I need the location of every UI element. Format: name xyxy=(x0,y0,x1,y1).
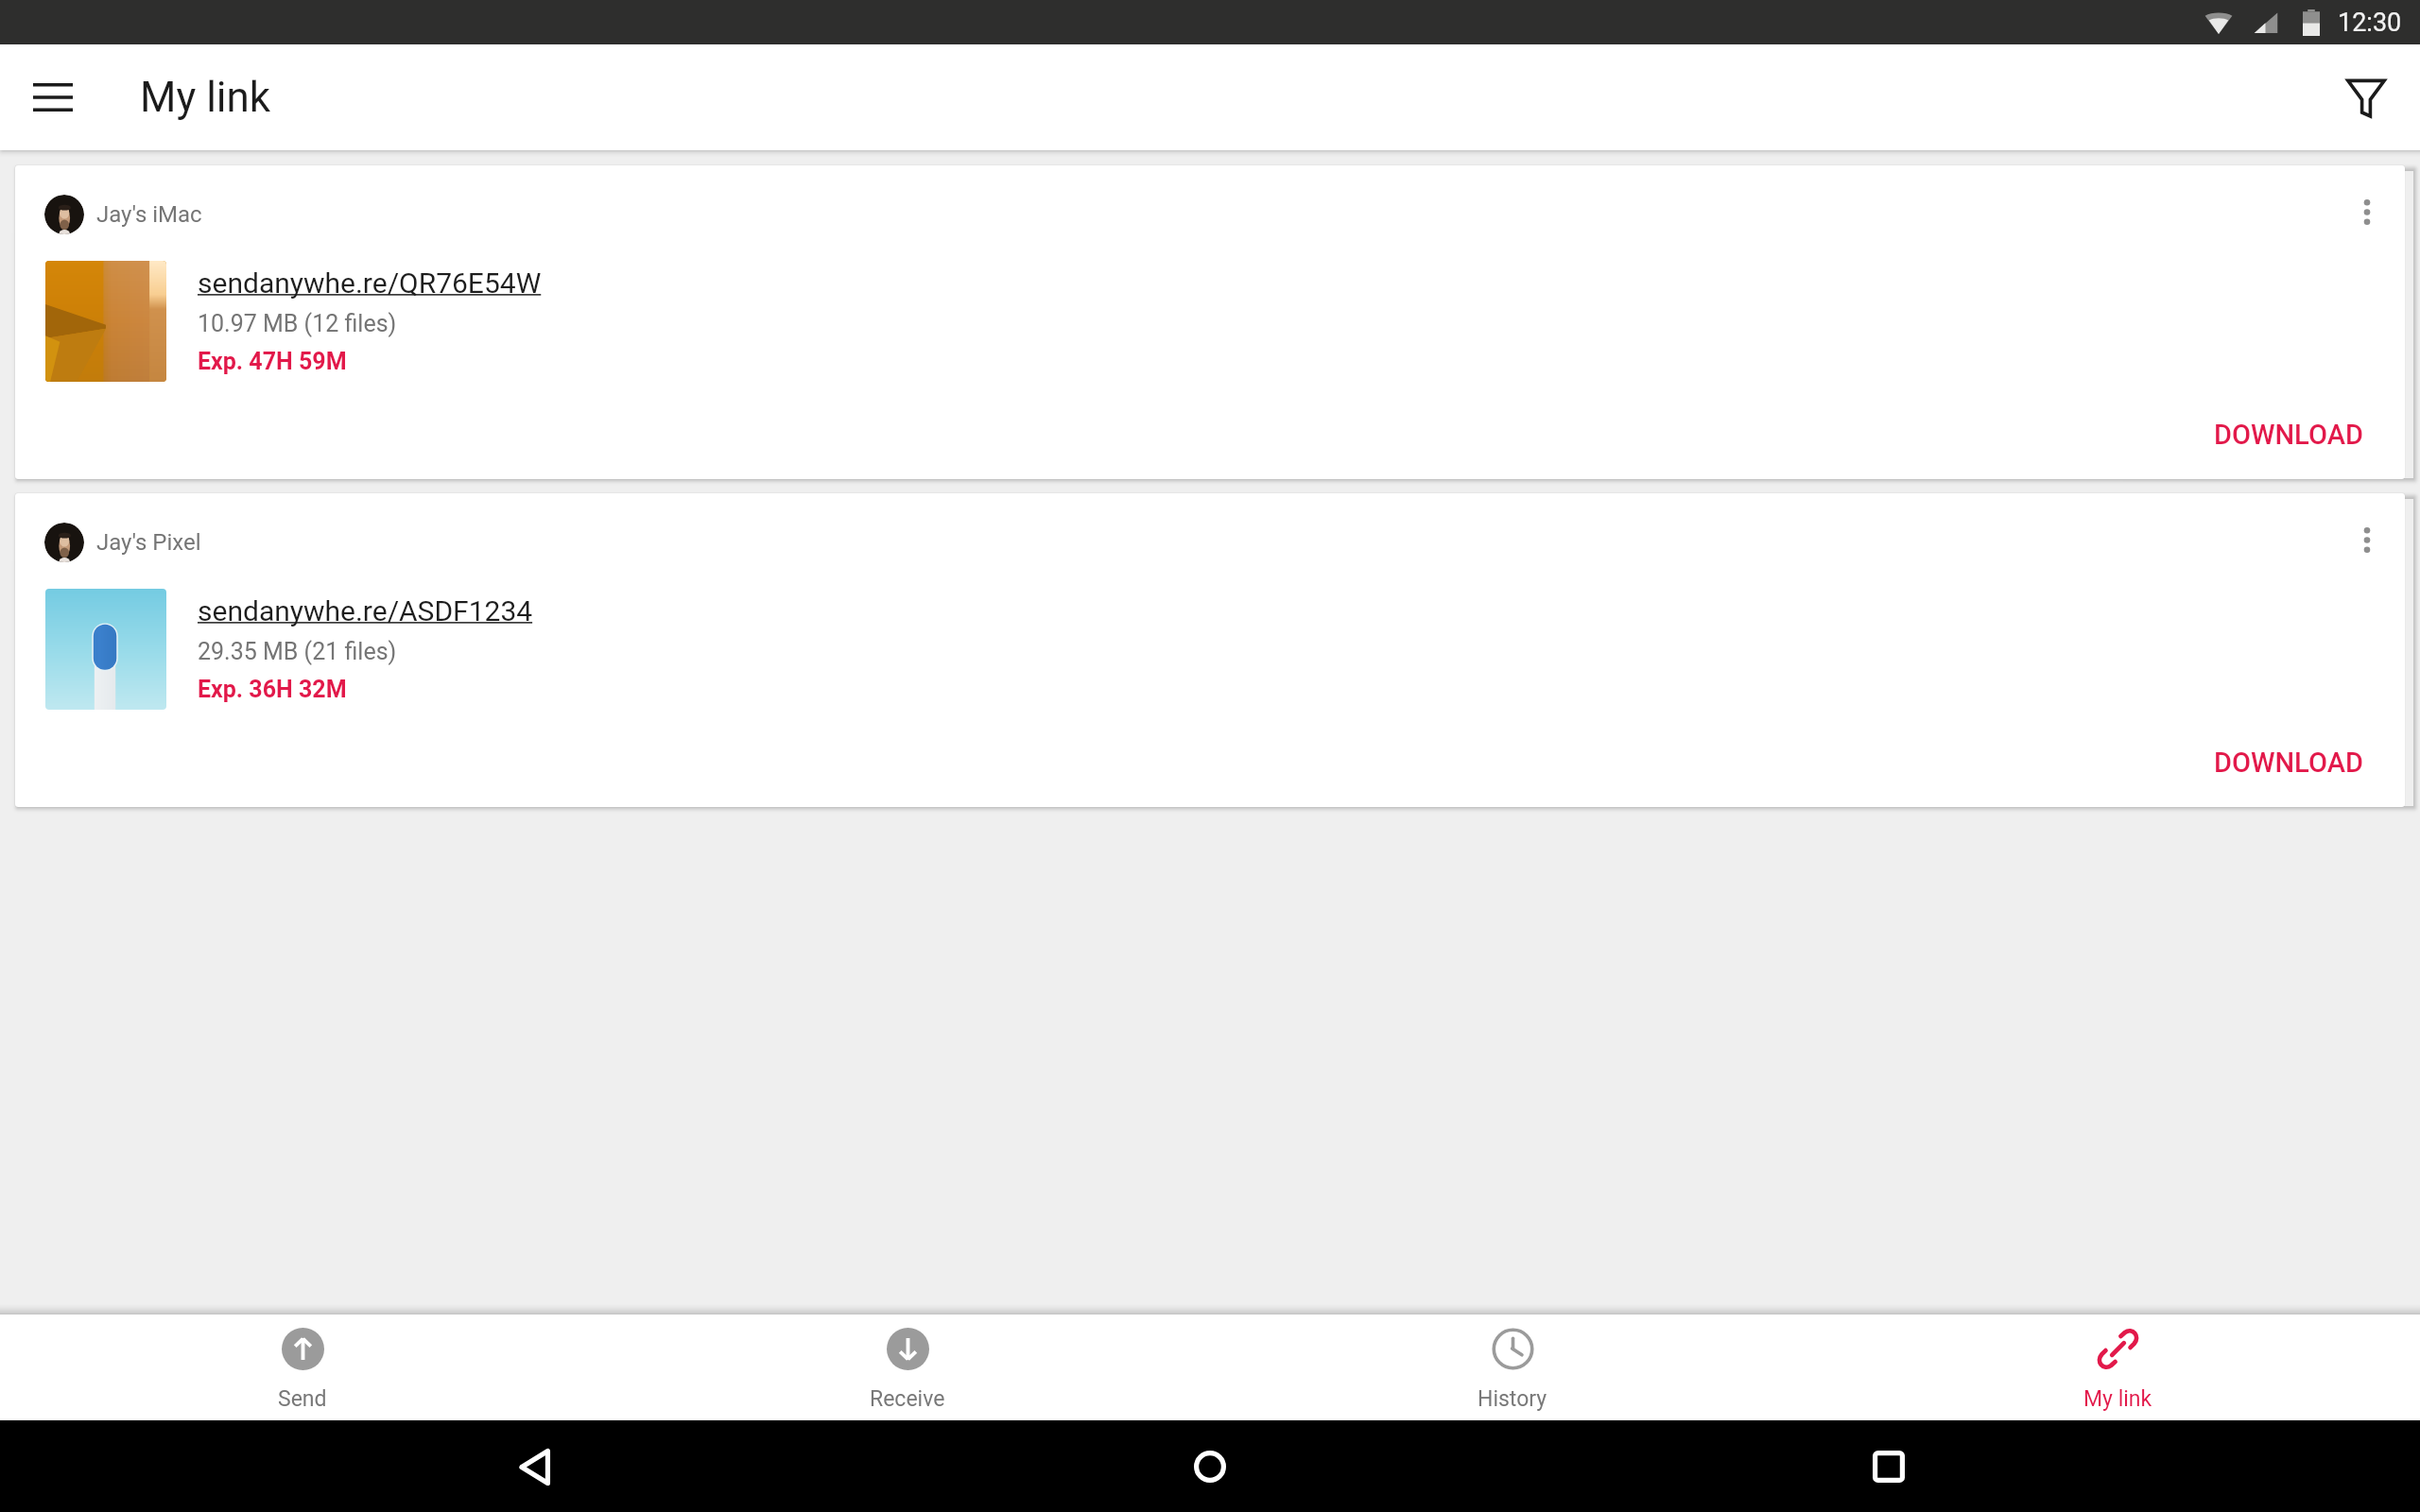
staticText: sendanywhe.re/QR76E54W xyxy=(198,266,542,300)
staticText: Jay's Pixel xyxy=(96,529,201,556)
button[interactable]: Jay's iMac xyxy=(15,165,2405,479)
button[interactable]: Recent apps xyxy=(1843,1421,1934,1512)
staticText: Send xyxy=(278,1386,327,1412)
button[interactable]: My link xyxy=(1815,1314,2420,1420)
staticText: DOWNLOAD xyxy=(2214,747,2363,779)
staticText: Jay's iMac xyxy=(96,201,202,228)
staticText: Receive xyxy=(870,1386,945,1412)
button[interactable]: Filter xyxy=(2325,56,2408,139)
button[interactable]: Open navigation menu xyxy=(11,56,95,139)
staticText: History xyxy=(1478,1386,1547,1412)
button[interactable]: More options xyxy=(2333,506,2401,574)
button[interactable]: Receive xyxy=(605,1314,1210,1420)
button[interactable]: Back xyxy=(490,1421,580,1512)
staticText: My link xyxy=(140,73,271,122)
button[interactable]: Home xyxy=(1165,1421,1255,1512)
staticText: My link xyxy=(2083,1386,2152,1412)
staticText: 12:30 xyxy=(2338,8,2402,38)
button[interactable]: More options xyxy=(2333,178,2401,246)
button[interactable]: DOWNLOAD xyxy=(2191,728,2386,798)
staticText: 10.97 MB (12 files) xyxy=(198,310,397,337)
button[interactable]: Jay's Pixel xyxy=(15,493,2405,807)
staticText: sendanywhe.re/ASDF1234 xyxy=(198,594,533,627)
staticText: Exp. 36H 32M xyxy=(198,676,347,703)
button[interactable]: DOWNLOAD xyxy=(2191,400,2386,470)
staticText: Exp. 47H 59M xyxy=(198,348,347,375)
button[interactable]: History xyxy=(1210,1314,1815,1420)
staticText: 29.35 MB (21 files) xyxy=(198,638,397,665)
staticText: DOWNLOAD xyxy=(2214,419,2363,451)
button[interactable]: Send xyxy=(0,1314,605,1420)
